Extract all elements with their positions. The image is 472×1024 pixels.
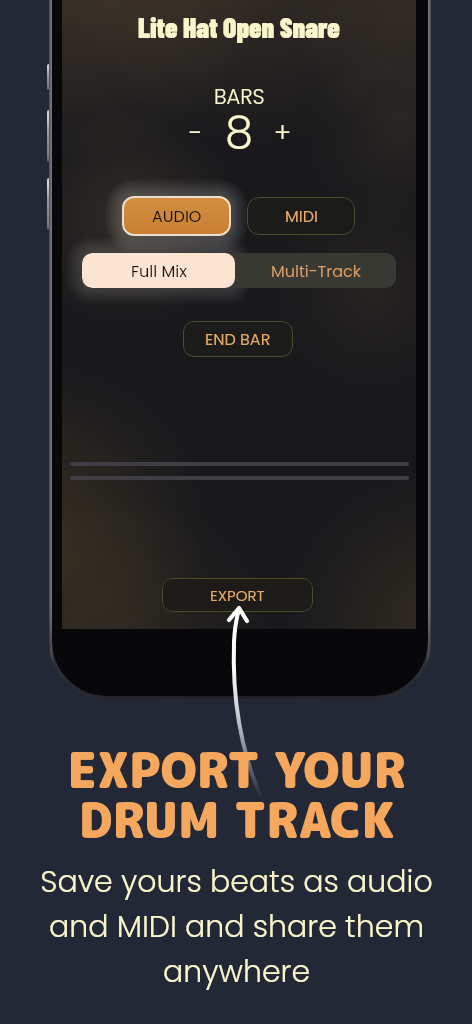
staticText: 8 <box>225 101 254 164</box>
staticText: - <box>189 115 203 151</box>
button[interactable]: Full Mix <box>82 253 235 288</box>
button[interactable]: EXPORT <box>162 578 313 612</box>
button[interactable]: Decrease bars <box>174 111 218 155</box>
button[interactable]: Multi-Track <box>235 253 396 288</box>
button[interactable]: MIDI <box>247 197 355 235</box>
staticText: EXPORT YOUR DRUM TRACK <box>67 736 406 854</box>
staticText: Multi-Track <box>271 260 361 282</box>
staticText: EXPORT <box>210 585 265 606</box>
staticText: AUDIO <box>152 205 202 227</box>
staticText: Full Mix <box>131 260 187 282</box>
staticText: MIDI <box>285 205 318 227</box>
button[interactable]: AUDIO <box>122 196 231 236</box>
staticText: Lite Hat Open Snare <box>138 10 340 43</box>
staticText: Save yours beats as audio and MIDI and s… <box>40 861 433 993</box>
staticText: BARS <box>214 82 265 111</box>
staticText: END BAR <box>205 328 271 350</box>
staticText: + <box>274 115 292 151</box>
button[interactable]: Increase bars <box>261 111 305 155</box>
button[interactable]: END BAR <box>183 321 293 357</box>
